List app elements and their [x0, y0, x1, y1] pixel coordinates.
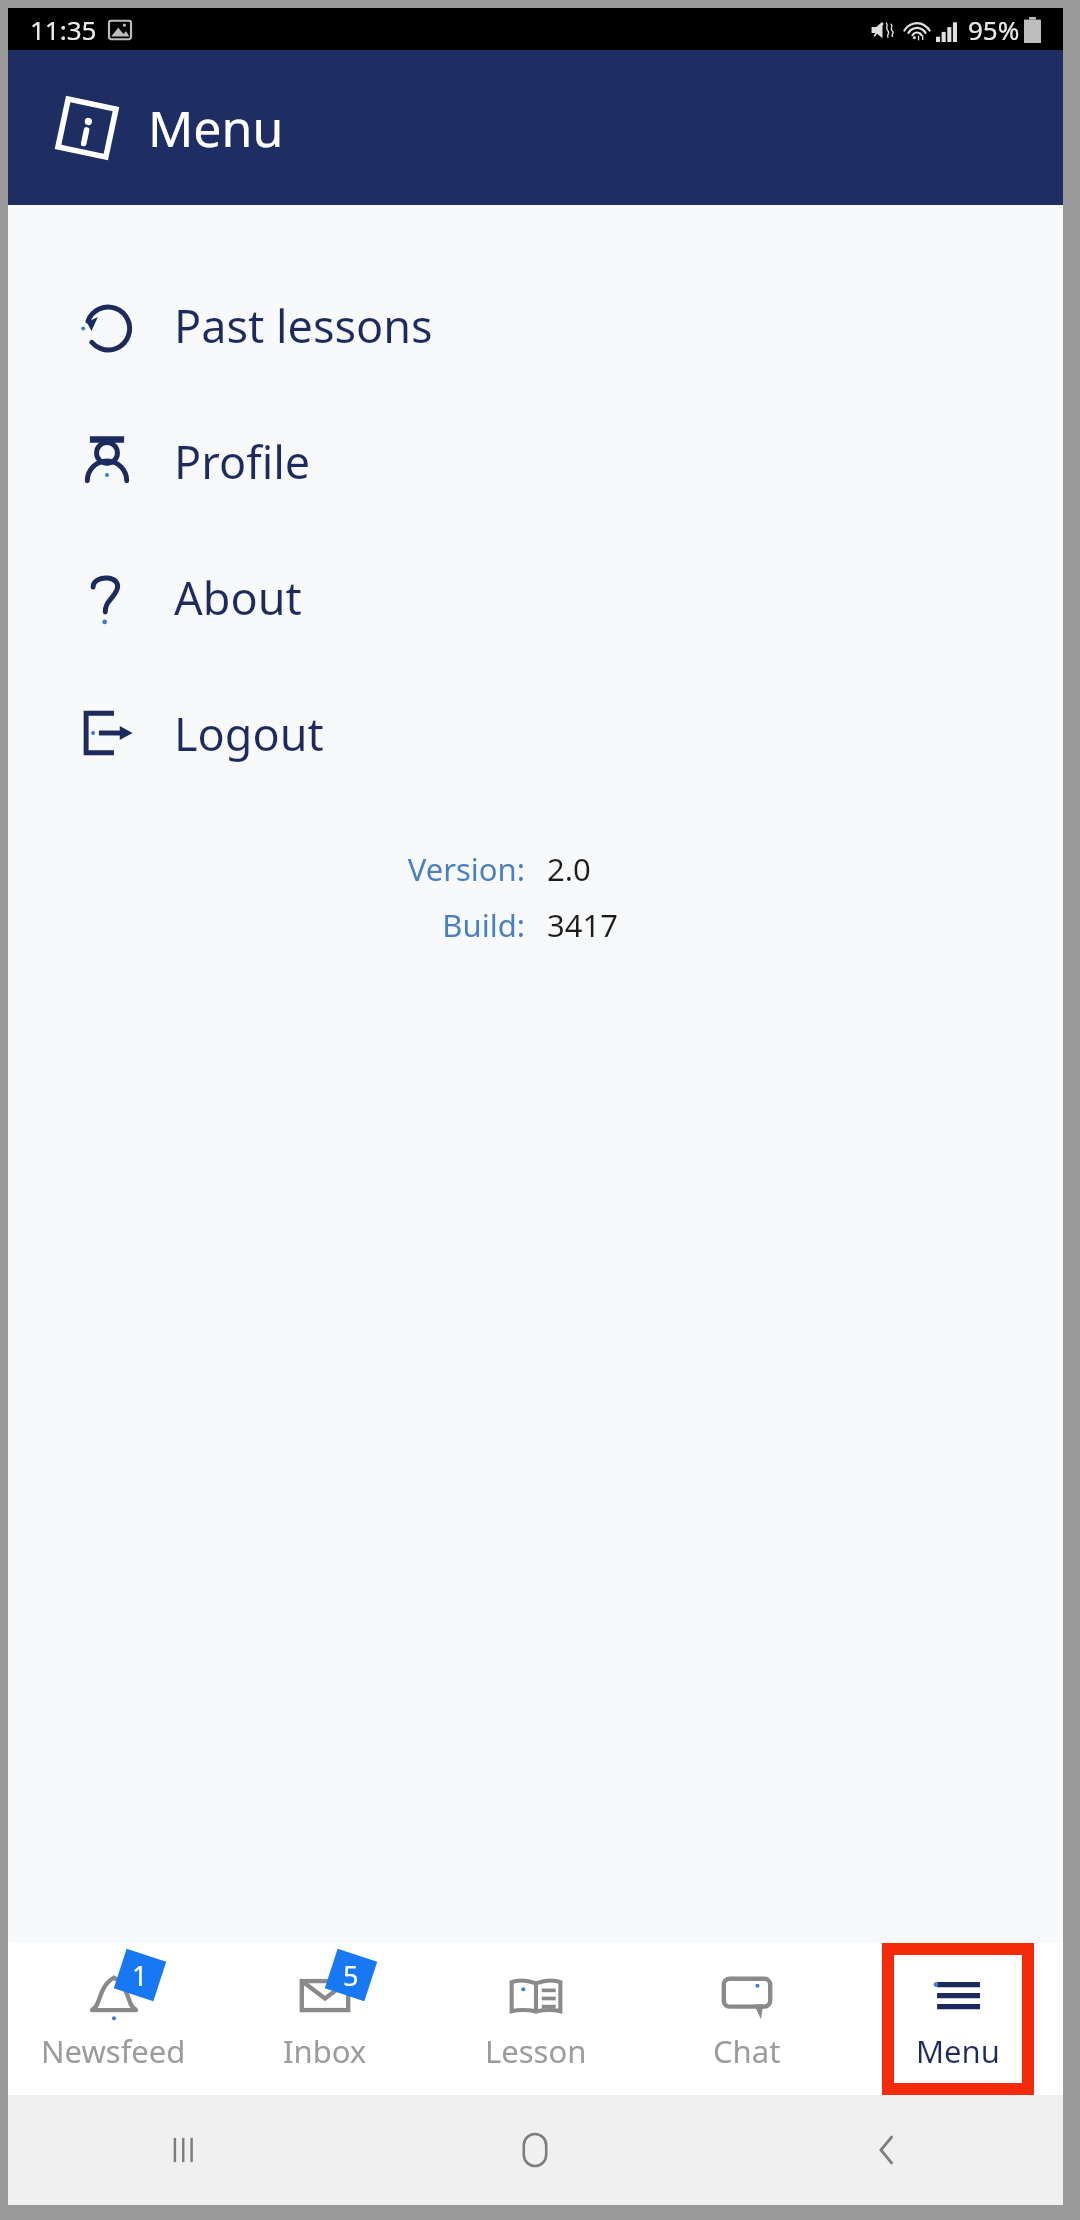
- staticText: Logout: [174, 703, 324, 764]
- staticText: Inbox: [283, 2030, 367, 2072]
- staticText: 11:35: [30, 12, 97, 47]
- staticText: Lesson: [485, 2030, 587, 2072]
- staticText: About: [174, 567, 302, 628]
- staticText: Profile: [174, 431, 311, 492]
- staticText: 3417: [547, 904, 707, 946]
- button[interactable]: Back: [855, 2118, 919, 2182]
- button[interactable]: Lesson: [485, 1943, 587, 2095]
- staticText: Version:: [365, 848, 525, 890]
- button[interactable]: Menu: [916, 1943, 1000, 2095]
- staticText: Build:: [365, 904, 525, 946]
- staticText: Newsfeed: [41, 2030, 186, 2072]
- staticText: 95%: [968, 12, 1020, 47]
- staticText: Chat: [713, 2030, 781, 2072]
- button[interactable]: 5: [283, 1943, 367, 2095]
- button[interactable]: Logout: [8, 665, 1063, 801]
- staticText: 2.0: [547, 848, 707, 890]
- staticText: Menu: [916, 2030, 1000, 2072]
- staticText: 5: [343, 1957, 359, 1994]
- button[interactable]: 1: [41, 1943, 186, 2095]
- button[interactable]: About: [8, 529, 1063, 665]
- button[interactable]: Home: [503, 2118, 567, 2182]
- staticText: Menu: [148, 94, 284, 162]
- button[interactable]: Past lessons: [8, 257, 1063, 393]
- button[interactable]: Chat: [713, 1943, 781, 2095]
- button[interactable]: Recent apps: [152, 2118, 216, 2182]
- staticText: 1: [132, 1957, 148, 1994]
- button[interactable]: Profile: [8, 393, 1063, 529]
- staticText: Past lessons: [174, 295, 433, 356]
